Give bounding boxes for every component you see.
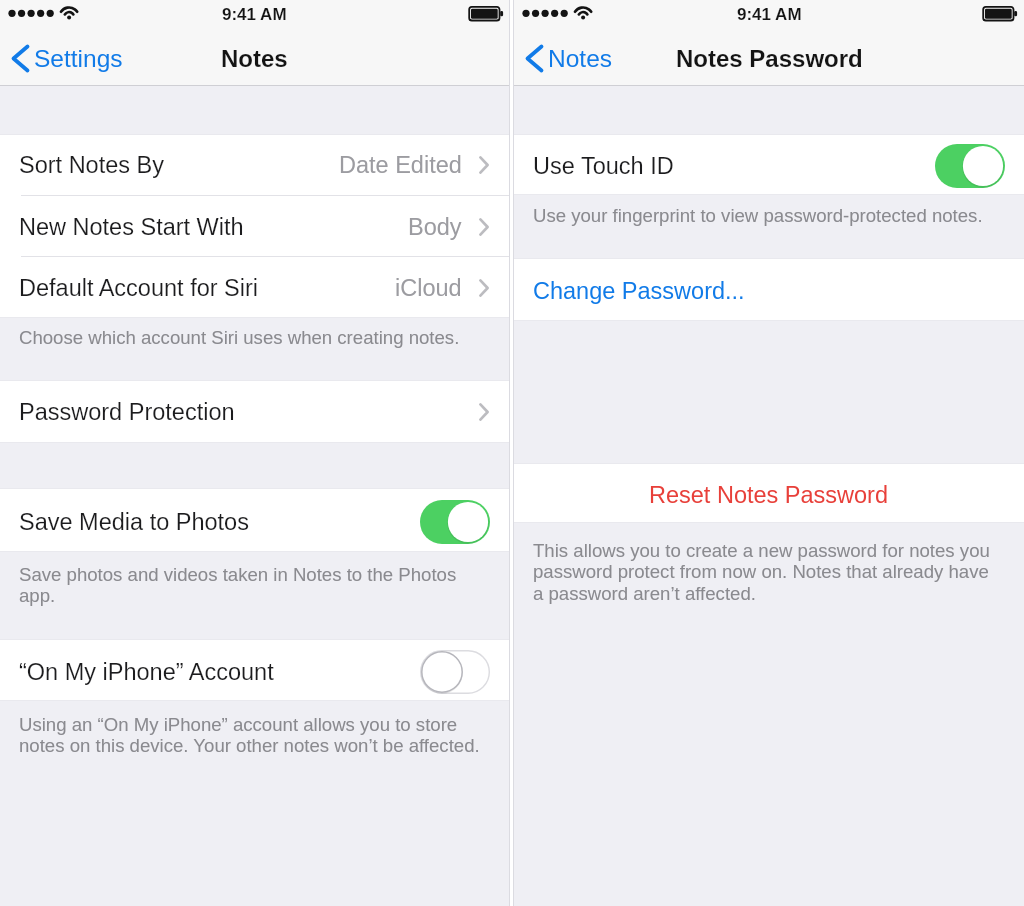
button[interactable]: “On My iPhone” Account [0, 639, 509, 701]
button[interactable]: Reset Notes Password [514, 463, 1024, 523]
staticText: Use your fingerprint to view password-pr… [533, 205, 983, 226]
other: Switch on [935, 144, 1005, 188]
staticText: “On My iPhone” Account [19, 659, 274, 685]
staticText: Date Edited [339, 152, 462, 178]
staticText: New Notes Start With [19, 214, 244, 240]
button[interactable]: Change Password... [514, 258, 1024, 321]
staticText: Save Media to Photos [19, 509, 249, 535]
button[interactable]: Notes [514, 31, 623, 86]
staticText: Default Account for Siri [19, 275, 259, 301]
staticText: Choose which account Siri uses when crea… [19, 327, 460, 348]
button[interactable]: Sort Notes By [0, 134, 509, 195]
staticText: Reset Notes Password [649, 482, 889, 508]
staticText: 9:41 AM [222, 5, 287, 24]
button[interactable]: Save Media to Photos [0, 488, 509, 552]
staticText: Use Touch ID [533, 153, 674, 179]
staticText: Password Protection [19, 399, 235, 425]
button[interactable]: Use Touch ID [514, 134, 1024, 195]
staticText: Save photos and videos taken in Notes to… [19, 564, 457, 606]
staticText: Notes [221, 45, 288, 72]
button[interactable]: Settings [0, 31, 133, 86]
staticText: Notes [548, 45, 613, 72]
button[interactable]: Password Protection [0, 380, 509, 443]
staticText: Notes Password [676, 45, 863, 72]
button[interactable]: New Notes Start With [0, 196, 509, 256]
other: Switch on [420, 500, 490, 544]
staticText: 9:41 AM [737, 5, 802, 24]
staticText: Using an “On My iPhone” account allows y… [19, 714, 480, 756]
button[interactable]: Default Account for Siri [0, 257, 509, 318]
staticText: Change Password... [533, 278, 745, 304]
staticText: Settings [34, 45, 123, 72]
other: Switch off [420, 650, 490, 694]
staticText: iCloud [395, 275, 462, 301]
staticText: This allows you to create a new password… [533, 540, 990, 604]
staticText: Body [408, 214, 462, 240]
staticText: Sort Notes By [19, 152, 164, 178]
